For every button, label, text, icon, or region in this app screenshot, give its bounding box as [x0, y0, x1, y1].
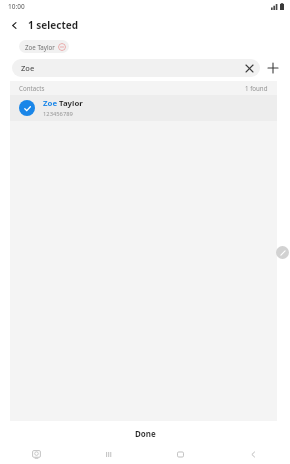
button[interactable]: Add recipient [264, 59, 282, 77]
button[interactable]: Done [0, 423, 290, 444]
staticText: 1 found [245, 84, 268, 92]
staticText: Contacts [19, 84, 45, 92]
button[interactable]: Back [4, 15, 24, 35]
staticText: Done [135, 428, 156, 439]
button[interactable]: Remove Zoe Taylor [58, 43, 66, 51]
button[interactable]: Zoe Taylor [19, 40, 69, 53]
button[interactable]: Clear search [242, 61, 256, 75]
button[interactable]: Zoe Taylor [10, 95, 277, 121]
staticText: Zoe Taylor [25, 43, 55, 51]
staticText: 10:00 [8, 2, 25, 11]
button[interactable]: Edge panel handle [276, 246, 289, 259]
button[interactable]: Zoe [12, 59, 260, 77]
staticText: Zoe [21, 63, 35, 73]
button[interactable]: Home [144, 444, 217, 464]
staticText: 123456789 [43, 110, 73, 118]
button[interactable]: Screen timeout [0, 444, 72, 464]
staticText: 1 selected [28, 18, 79, 32]
staticText: Zoe Taylor [43, 98, 83, 109]
button[interactable]: Recents [72, 444, 144, 464]
